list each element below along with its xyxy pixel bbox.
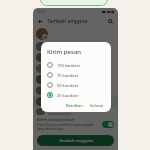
button[interactable]: 50 karakter — [47, 82, 106, 88]
button[interactable]: 25 karakter — [47, 92, 106, 98]
staticText: Kirim 25 pesan terakhir kepada anggota y… — [37, 123, 99, 131]
button[interactable]: Selesai — [88, 102, 106, 109]
staticText: 50 karakter — [57, 83, 79, 88]
button[interactable]: 75 karakter — [47, 72, 106, 78]
staticText: 75 karakter — [57, 73, 79, 78]
button[interactable] — [36, 86, 115, 95]
staticText: 25 karakter — [57, 93, 79, 98]
staticText: Tambah anggota — [59, 138, 93, 144]
button[interactable]: 100 karakter — [47, 62, 106, 68]
button[interactable]: Back — [36, 17, 45, 26]
button[interactable]: Tambah anggota — [37, 135, 114, 146]
staticText: 100 karakter — [57, 63, 81, 68]
button[interactable] — [36, 42, 115, 51]
button[interactable]: Search — [106, 17, 115, 26]
staticText: 12:41 — [36, 9, 45, 14]
button[interactable] — [36, 28, 115, 40]
button[interactable] — [36, 97, 115, 106]
button[interactable] — [40, 0, 108, 6]
button[interactable] — [36, 75, 115, 84]
button[interactable] — [36, 64, 115, 73]
button[interactable] — [36, 53, 115, 62]
button[interactable]: Kirim rincian pesan — [37, 117, 114, 131]
button[interactable]: Batalkan — [64, 102, 85, 109]
staticText: Batalkan — [66, 103, 83, 108]
staticText: Selesai — [90, 103, 104, 108]
staticText: Kirim rincian pesan — [37, 117, 74, 122]
button[interactable] — [36, 108, 115, 115]
staticText: Tambah anggota — [47, 18, 88, 25]
staticText: Kirim pesan — [47, 48, 82, 56]
